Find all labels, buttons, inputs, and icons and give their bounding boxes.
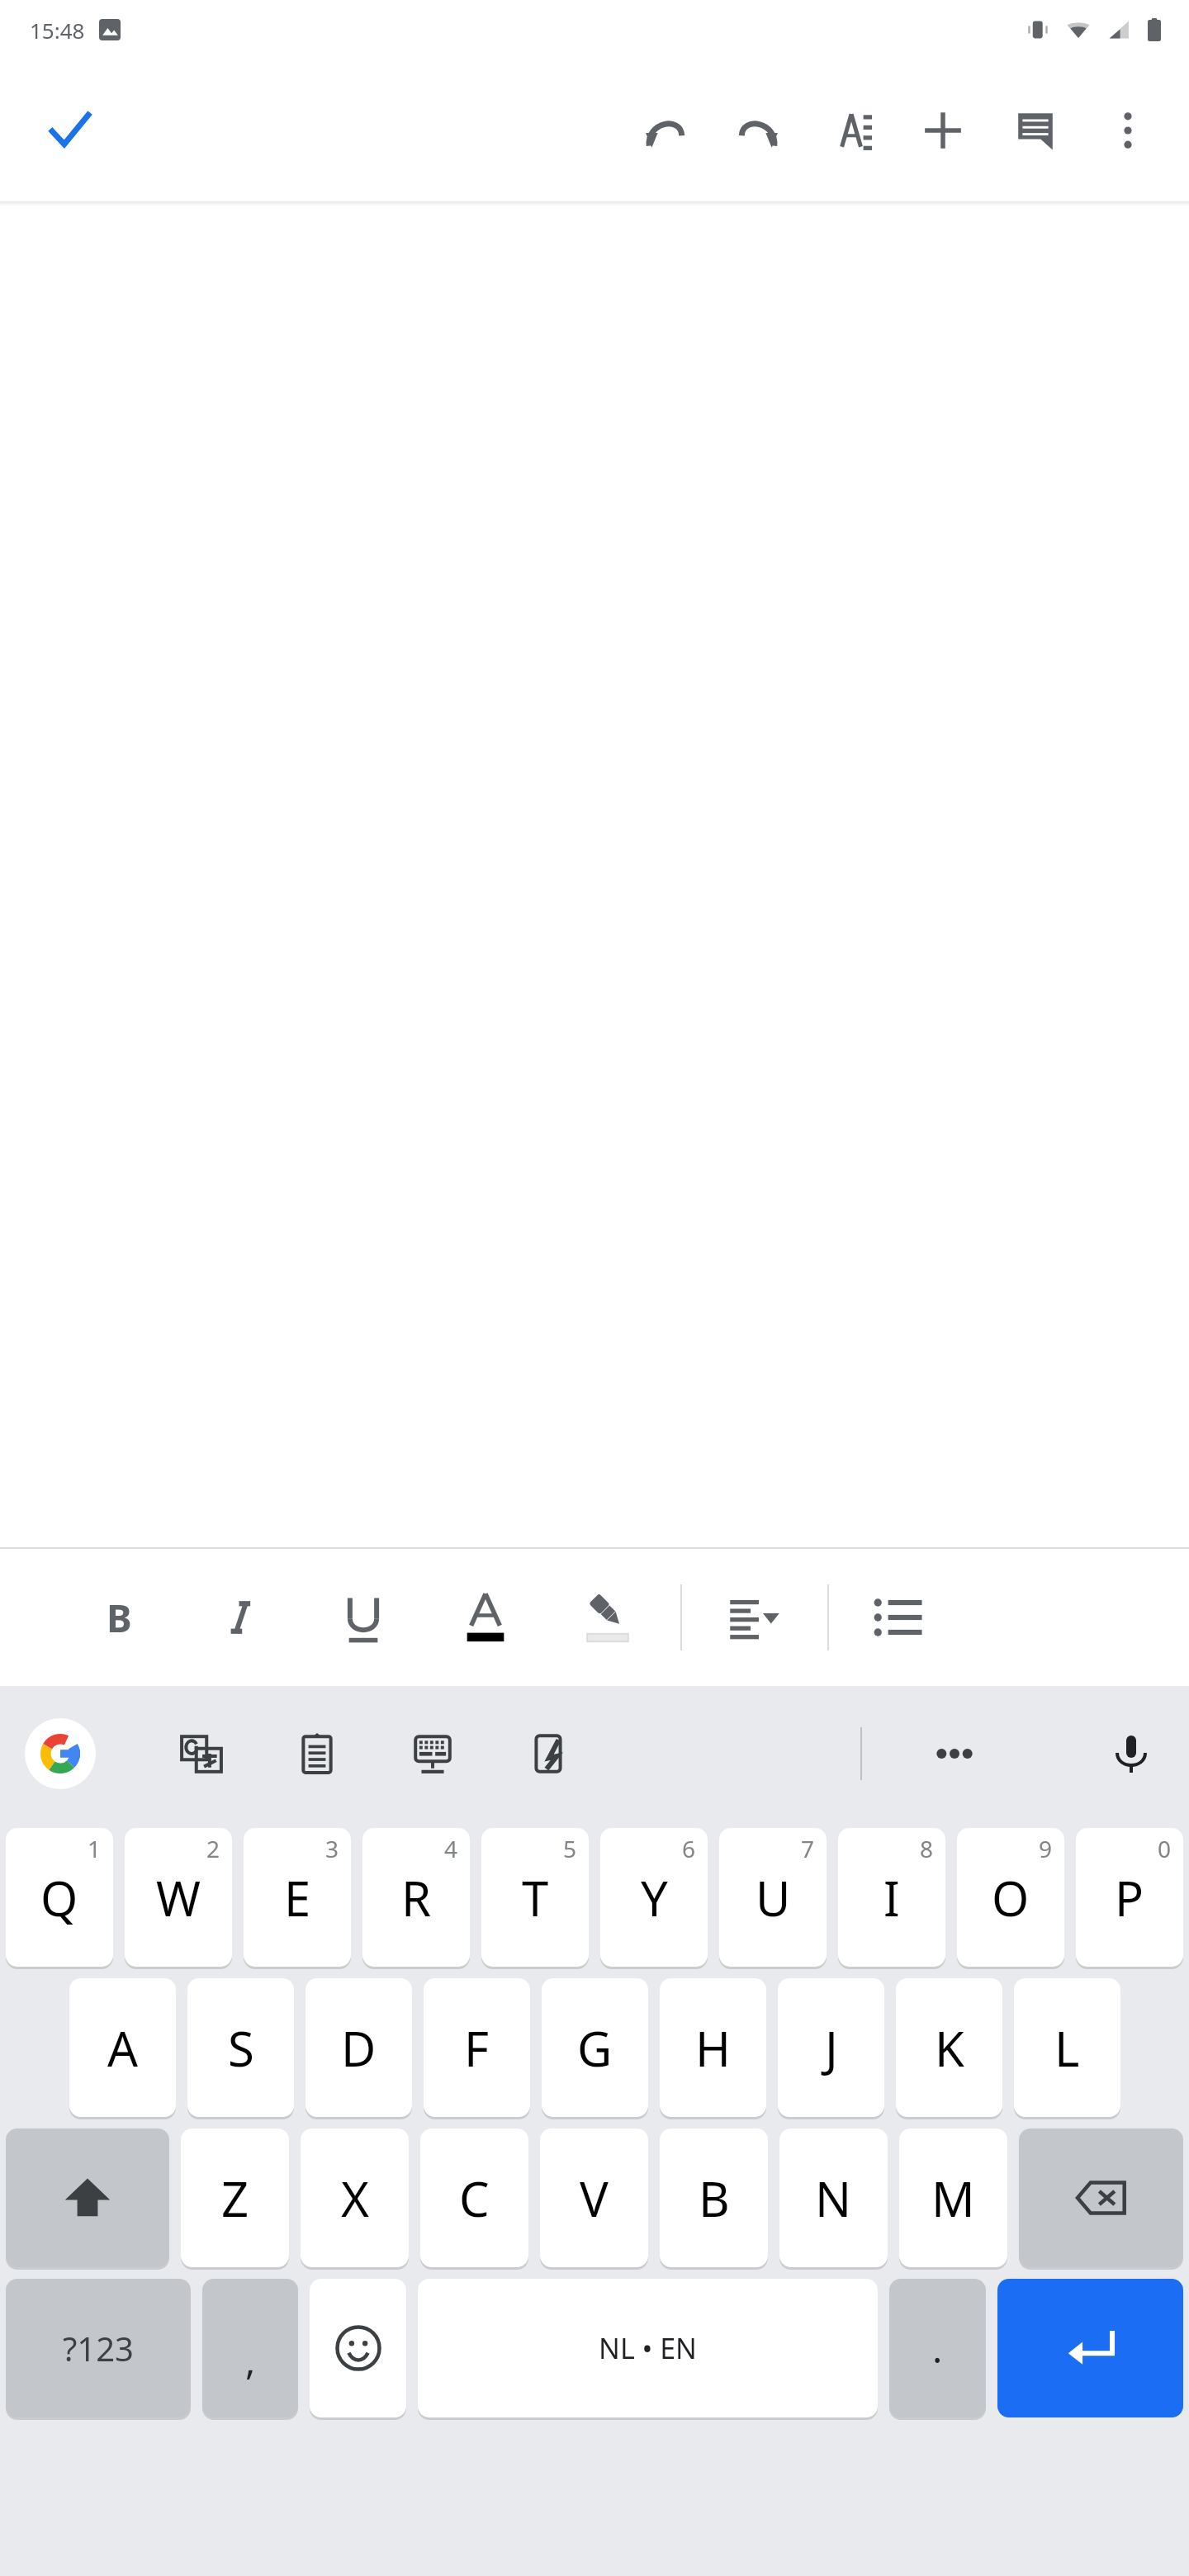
button[interactable]: H (660, 1978, 766, 2117)
staticText: G (577, 2015, 613, 2081)
staticText: C (459, 2166, 490, 2231)
button[interactable]: K (896, 1978, 1002, 2117)
staticText: 0 (1158, 1833, 1172, 1864)
button[interactable]: B (660, 2129, 768, 2267)
button[interactable]: Translate (165, 1717, 238, 1790)
staticText: N (815, 2166, 852, 2231)
staticText: O (992, 1865, 1030, 1930)
staticText: U (756, 1865, 791, 1930)
button[interactable]: C (420, 2129, 528, 2267)
button[interactable]: Space, NL and EN (418, 2279, 878, 2417)
staticText: P (1115, 1865, 1144, 1930)
staticText: ?123 (63, 2326, 134, 2370)
button[interactable]: J (778, 1978, 884, 2117)
staticText: A (107, 2015, 139, 2081)
staticText: 4 (444, 1833, 458, 1864)
staticText: H (695, 2015, 731, 2081)
staticText: , (245, 2334, 256, 2386)
button[interactable]: Keyboard modes (396, 1717, 469, 1790)
button[interactable]: P (1076, 1828, 1183, 1967)
button[interactable]: W (125, 1828, 232, 1967)
staticText: 3 (325, 1833, 339, 1864)
button[interactable]: Symbols (6, 2279, 191, 2417)
staticText: D (341, 2015, 377, 2081)
button[interactable]: Undo (619, 84, 712, 177)
button[interactable]: M (899, 2129, 1007, 2267)
button[interactable]: Redo (712, 84, 804, 177)
button[interactable]: X (301, 2129, 409, 2267)
staticText: S (228, 2015, 254, 2081)
button[interactable]: Comments (989, 84, 1082, 177)
staticText: 8 (920, 1833, 934, 1864)
staticText: 5 (563, 1833, 577, 1864)
button[interactable]: Emoji (310, 2279, 406, 2417)
staticText: E (284, 1865, 311, 1930)
button[interactable]: T (481, 1828, 589, 1967)
staticText: B (699, 2166, 730, 2231)
staticText: Q (40, 1865, 78, 1930)
staticText: Y (641, 1865, 668, 1930)
staticText: I (883, 1865, 900, 1930)
staticText: M (931, 2166, 975, 2231)
staticText: Z (221, 2166, 249, 2231)
button[interactable]: Done (30, 91, 109, 170)
staticText: 1 (88, 1833, 102, 1864)
staticText: 2 (206, 1833, 220, 1864)
button[interactable]: Text color (446, 1578, 525, 1657)
button[interactable]: G (542, 1978, 648, 2117)
staticText: L (1054, 2015, 1080, 2081)
staticText: V (580, 2166, 609, 2231)
staticText: J (825, 2015, 838, 2081)
button[interactable]: Underline (324, 1578, 403, 1657)
staticText: X (341, 2166, 369, 2231)
button[interactable]: V (540, 2129, 648, 2267)
button[interactable]: More keyboard options (918, 1717, 991, 1790)
button[interactable]: Italic (201, 1578, 281, 1657)
button[interactable]: N (779, 2129, 888, 2267)
staticText: F (464, 2015, 490, 2081)
button[interactable]: D (306, 1978, 412, 2117)
button[interactable]: R (362, 1828, 470, 1967)
button[interactable]: Clipboard (281, 1717, 353, 1790)
button[interactable]: Highlight (568, 1578, 647, 1657)
button[interactable]: Alignment (715, 1578, 794, 1657)
button[interactable]: Insert (897, 84, 989, 177)
button[interactable]: Backspace (1019, 2129, 1183, 2267)
button[interactable]: Formatting (804, 84, 897, 177)
staticText: R (401, 1865, 432, 1930)
button[interactable]: Period (889, 2279, 986, 2417)
button[interactable]: Shift (6, 2129, 169, 2267)
staticText: 15:48 (30, 16, 85, 45)
staticText: 9 (1039, 1833, 1053, 1864)
button[interactable]: U (719, 1828, 827, 1967)
staticText: 6 (682, 1833, 696, 1864)
staticText: B (107, 1592, 132, 1643)
button[interactable]: Handwriting (512, 1717, 585, 1790)
staticText: K (935, 2015, 964, 2081)
staticText: W (156, 1865, 201, 1930)
button[interactable]: Voice input (1093, 1716, 1169, 1792)
button[interactable]: O (957, 1828, 1064, 1967)
button[interactable]: Bulleted list (859, 1578, 938, 1657)
button[interactable]: S (187, 1978, 294, 2117)
button[interactable]: Enter (997, 2279, 1183, 2417)
button[interactable]: Y (600, 1828, 708, 1967)
staticText: . (932, 2323, 943, 2375)
button[interactable]: Comma (202, 2279, 298, 2417)
button[interactable]: More options (1082, 84, 1174, 177)
button[interactable]: F (424, 1978, 530, 2117)
button[interactable]: A (69, 1978, 176, 2117)
button[interactable]: Bold (79, 1578, 159, 1657)
button[interactable]: Google search (25, 1718, 96, 1789)
button[interactable]: E (244, 1828, 351, 1967)
staticText: T (522, 1865, 549, 1930)
staticText: 7 (801, 1833, 815, 1864)
button[interactable]: I (838, 1828, 945, 1967)
staticText: NL • EN (599, 2329, 697, 2367)
button[interactable]: Z (181, 2129, 289, 2267)
button[interactable]: L (1014, 1978, 1120, 2117)
button[interactable]: Q (6, 1828, 113, 1967)
